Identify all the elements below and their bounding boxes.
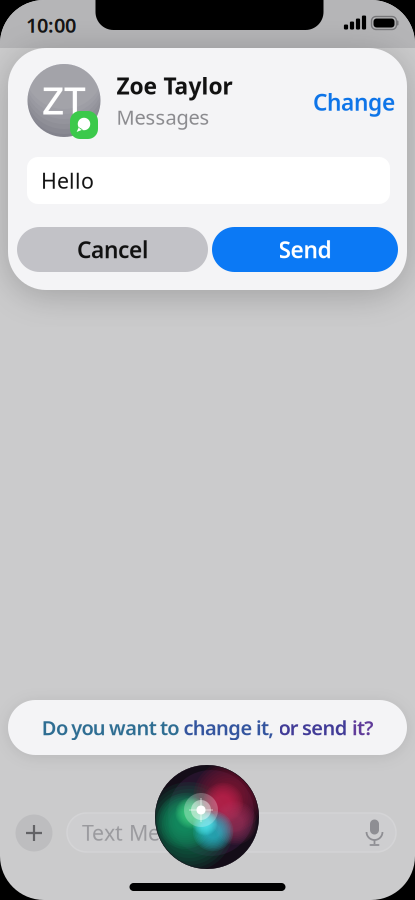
button[interactable]: Change <box>313 87 395 117</box>
staticText: Send <box>278 234 331 264</box>
staticText: Zoe Taylor <box>116 71 232 101</box>
staticText: Do you want to <box>42 714 183 741</box>
button[interactable]: Cancel <box>17 227 208 272</box>
staticText: Hello <box>41 166 94 195</box>
staticText: change it, <box>183 714 278 741</box>
staticText: ZT <box>42 74 86 125</box>
button[interactable]: Add attachment <box>15 814 52 851</box>
staticText: 10:00 <box>26 12 76 38</box>
staticText: it? <box>352 714 373 741</box>
staticText: Cancel <box>77 234 148 264</box>
staticText: Text Message <box>82 818 217 847</box>
button[interactable]: Send <box>212 227 398 272</box>
button[interactable]: Dictate <box>357 815 391 849</box>
staticText: or send <box>278 714 352 741</box>
button[interactable]: Hello <box>27 157 390 204</box>
staticText: Change <box>313 87 395 117</box>
button[interactable]: Text Message field <box>67 813 396 852</box>
staticText: Messages <box>116 104 209 130</box>
